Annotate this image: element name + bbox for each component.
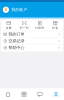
button[interactable]: 交易记录	[1, 38, 63, 44]
button[interactable]: 余额	[1, 19, 16, 31]
button[interactable]: 红包	[47, 19, 63, 31]
staticText: 帮助中心	[9, 45, 25, 50]
button[interactable]: Services	[16, 89, 32, 100]
button[interactable]: 付款码	[32, 19, 47, 31]
button[interactable]: 我的订单	[1, 31, 63, 38]
button[interactable]: Profile photo	[3, 7, 9, 13]
staticText: 交易记录	[9, 38, 25, 43]
button[interactable]: Me	[48, 89, 64, 100]
button[interactable]: 扫一扫	[16, 19, 32, 31]
staticText: 付款码	[35, 26, 44, 29]
staticText: 余额	[6, 26, 12, 29]
staticText: 扫一扫	[20, 26, 29, 29]
button[interactable]: Messages	[32, 89, 48, 100]
staticText: 红包	[52, 26, 58, 29]
staticText: 我的账户	[11, 7, 27, 12]
button[interactable]: Home	[0, 89, 16, 100]
button[interactable]: 帮助中心	[1, 44, 63, 51]
staticText: 我的订单	[9, 32, 25, 37]
